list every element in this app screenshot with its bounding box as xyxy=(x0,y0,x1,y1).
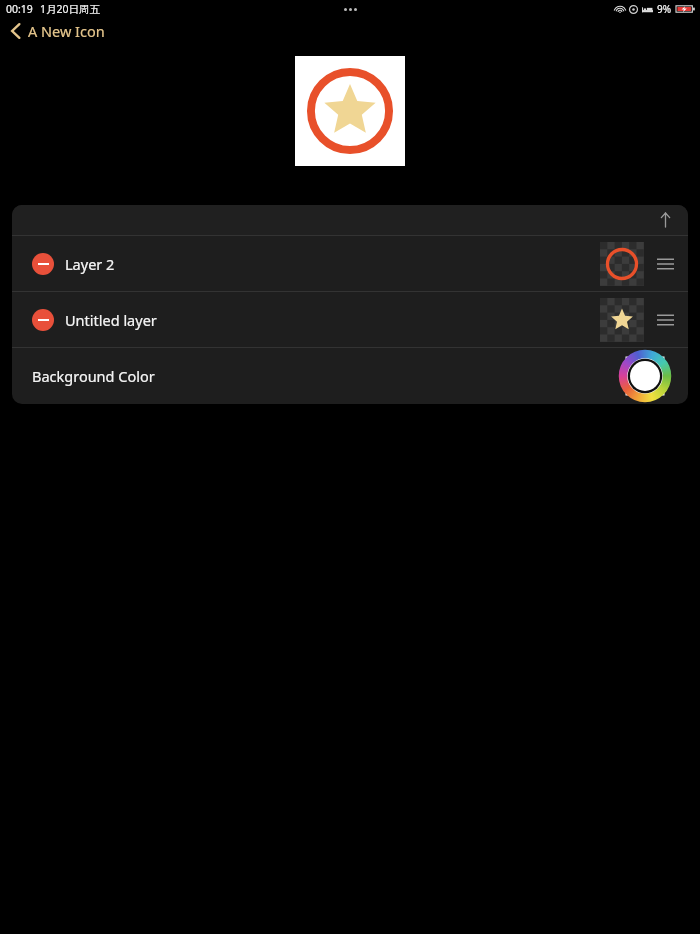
staticText: 1月20日周五 xyxy=(40,2,101,16)
button[interactable]: Choose background color xyxy=(620,351,670,401)
button[interactable]: Delete Untitled layer xyxy=(32,309,54,331)
button[interactable]: Back xyxy=(8,19,107,43)
staticText: Background Color xyxy=(32,366,155,386)
staticText: Untitled layer xyxy=(65,310,157,330)
button[interactable]: Delete Layer 2 xyxy=(12,236,688,291)
staticText: Layer 2 xyxy=(65,254,115,274)
staticText: A New Icon xyxy=(28,21,105,41)
staticText: 00:19 xyxy=(6,2,33,16)
button[interactable]: Move up xyxy=(654,209,676,231)
button[interactable]: Delete Untitled layer xyxy=(12,292,688,347)
button[interactable]: Background Color xyxy=(12,348,688,404)
button[interactable]: Icon preview xyxy=(295,56,405,166)
button[interactable]: Reorder Untitled layer xyxy=(654,309,676,331)
staticText: 9% xyxy=(657,2,672,16)
button[interactable]: Delete Layer 2 xyxy=(32,253,54,275)
button[interactable]: Reorder Layer 2 xyxy=(654,253,676,275)
